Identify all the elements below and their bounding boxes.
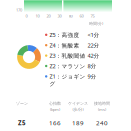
staticText: (bpm) bbox=[50, 107, 60, 112]
staticText: 0 bbox=[25, 13, 27, 19]
staticText: 接地時間 bbox=[94, 101, 110, 106]
staticText: Z5 bbox=[18, 119, 26, 127]
staticText: (歩/分) bbox=[72, 107, 83, 112]
staticText: 9分 bbox=[87, 73, 96, 80]
staticText: 時間(分) bbox=[89, 21, 103, 26]
staticText: Z1：ジョギング bbox=[49, 73, 85, 87]
staticText: 20 bbox=[46, 13, 50, 19]
staticText: (ms) bbox=[98, 107, 106, 112]
staticText: 75 bbox=[90, 13, 94, 19]
staticText: 42分 bbox=[87, 52, 99, 59]
staticText: Z5：高強度 bbox=[49, 31, 79, 39]
staticText: ケイデンス bbox=[68, 101, 88, 106]
staticText: Z3：乳酸閾値 bbox=[49, 52, 85, 59]
staticText: Z2：マラソン bbox=[49, 62, 85, 70]
staticText: 170 bbox=[16, 7, 22, 13]
staticText: 8分 bbox=[87, 62, 96, 70]
staticText: 40 bbox=[68, 13, 72, 19]
staticText: 189 bbox=[72, 119, 84, 127]
staticText: 60 bbox=[79, 13, 83, 19]
staticText: 心拍数 bbox=[49, 101, 61, 106]
staticText: 30 bbox=[57, 13, 61, 19]
staticText: 240 bbox=[96, 119, 108, 127]
staticText: 22分 bbox=[87, 41, 99, 49]
staticText: Z4：無酸素 bbox=[49, 41, 79, 49]
staticText: ゾーン bbox=[16, 101, 28, 106]
staticText: 166 bbox=[49, 119, 61, 127]
staticText: <1分 bbox=[87, 31, 99, 39]
staticText: 10 bbox=[35, 13, 39, 19]
